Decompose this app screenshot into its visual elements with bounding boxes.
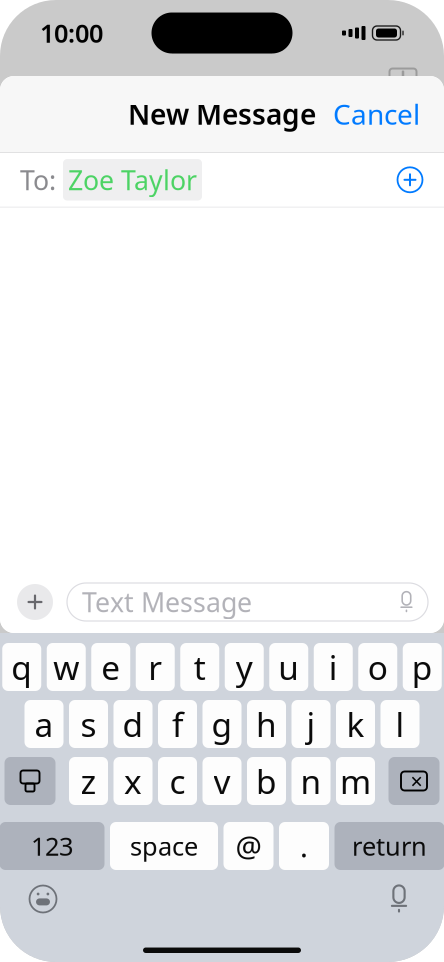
button[interactable]: space [110, 822, 218, 870]
button[interactable]: Emoji keyboard [20, 876, 66, 922]
button[interactable]: p [403, 643, 442, 691]
staticText: Text Message [82, 584, 252, 620]
button[interactable]: return [334, 822, 444, 870]
staticText: v [213, 759, 230, 803]
staticText: s [80, 702, 96, 746]
staticText: i [329, 645, 338, 689]
staticText: w [53, 645, 79, 689]
button[interactable]: m [336, 757, 375, 805]
staticText: x [124, 759, 142, 803]
button[interactable]: h [247, 700, 286, 748]
button[interactable]: i [314, 643, 353, 691]
staticText: u [278, 645, 299, 689]
button[interactable]: 123 [0, 822, 104, 870]
button[interactable]: a [24, 700, 63, 748]
staticText: c [169, 759, 185, 803]
staticText: New Message [128, 95, 316, 133]
staticText: q [11, 645, 32, 689]
button[interactable]: j [291, 700, 330, 748]
button[interactable]: q [2, 643, 41, 691]
staticText: f [172, 702, 183, 746]
button[interactable]: Add contact [387, 157, 433, 203]
staticText: p [412, 645, 433, 689]
button[interactable]: v [202, 757, 241, 805]
button[interactable]: y [225, 643, 264, 691]
button[interactable]: Delete [388, 757, 439, 805]
button[interactable]: k [336, 700, 375, 748]
button[interactable]: l [380, 700, 419, 748]
button[interactable]: Zoe Taylor [63, 159, 202, 200]
button[interactable]: b [247, 757, 286, 805]
button[interactable]: u [269, 643, 308, 691]
button[interactable]: Cancel [315, 83, 438, 145]
button[interactable]: n [291, 757, 330, 805]
staticText: j [306, 702, 315, 746]
button[interactable]: @ [223, 822, 273, 870]
staticText: return [352, 829, 427, 863]
staticText: h [256, 702, 277, 746]
staticText: y [236, 645, 253, 689]
staticText: t [194, 645, 206, 689]
button[interactable]: Dictation [376, 876, 422, 922]
button[interactable]: w [47, 643, 86, 691]
button[interactable]: r [136, 643, 175, 691]
staticText: d [122, 702, 143, 746]
button[interactable]: Text Message [67, 583, 428, 621]
staticText: o [368, 645, 388, 689]
button[interactable]: Shift [4, 757, 55, 805]
staticText: 10:00 [40, 16, 103, 50]
button[interactable]: More options [16, 582, 54, 622]
staticText: n [300, 759, 321, 803]
staticText: z [80, 759, 96, 803]
button[interactable]: t [180, 643, 219, 691]
staticText: e [101, 645, 120, 689]
staticText: @ [235, 826, 261, 865]
staticText: . [300, 826, 308, 865]
button[interactable]: . [279, 822, 329, 870]
staticText: × [410, 767, 422, 795]
staticText: 123 [31, 829, 73, 863]
staticText: Zoe Taylor [68, 162, 197, 197]
staticText: r [148, 645, 162, 689]
staticText: k [346, 702, 364, 746]
button[interactable]: g [202, 700, 241, 748]
staticText: Cancel [333, 95, 420, 133]
button[interactable]: e [91, 643, 130, 691]
button[interactable]: d [113, 700, 152, 748]
button[interactable]: z [69, 757, 108, 805]
button[interactable]: o [358, 643, 397, 691]
staticText: g [211, 702, 232, 746]
button[interactable]: x [113, 757, 152, 805]
staticText: To: [20, 162, 56, 197]
staticText: l [395, 702, 404, 746]
staticText: a [34, 702, 53, 746]
staticText: b [256, 759, 277, 803]
button[interactable]: c [158, 757, 197, 805]
button[interactable]: f [158, 700, 197, 748]
button[interactable]: s [69, 700, 108, 748]
staticText: m [340, 759, 371, 803]
staticText: space [130, 829, 198, 863]
